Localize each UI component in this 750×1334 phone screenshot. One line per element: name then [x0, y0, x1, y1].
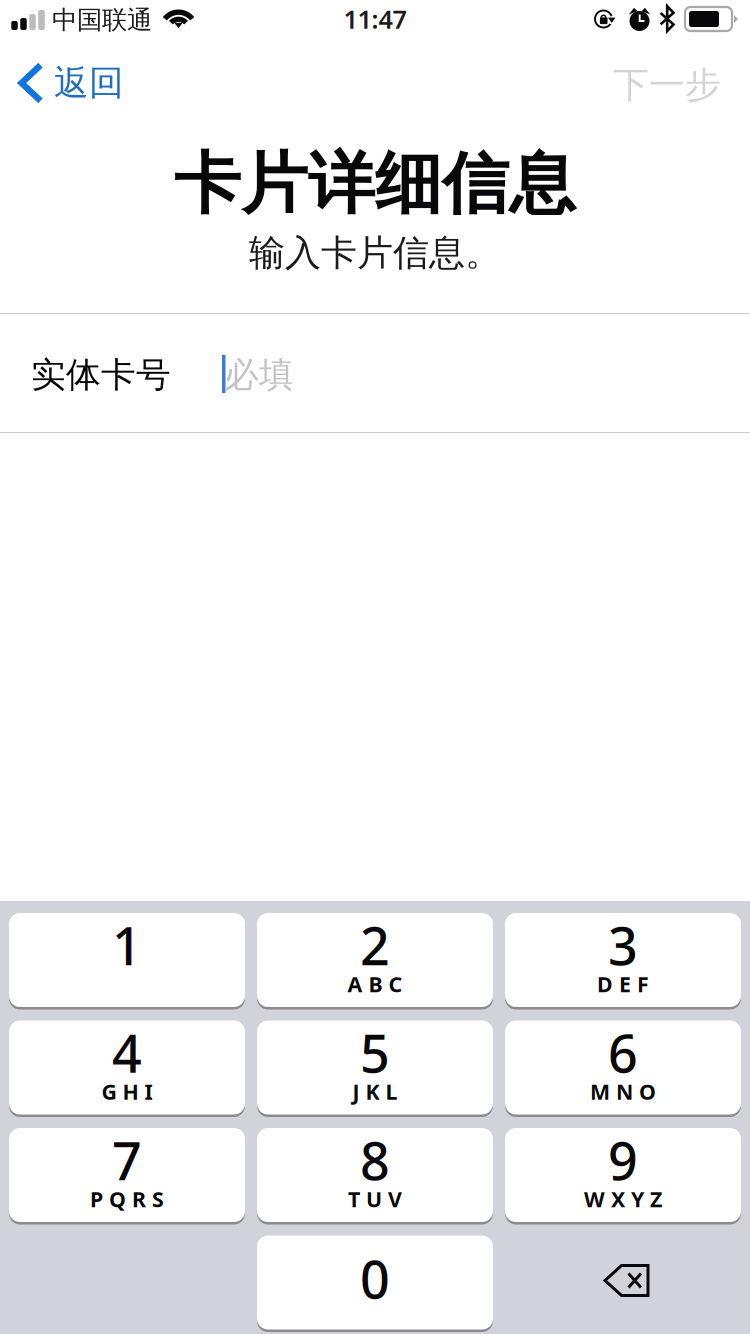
staticText: D E F: [597, 970, 649, 998]
button[interactable]: 3: [505, 913, 741, 1010]
staticText: 4: [112, 1018, 142, 1087]
staticText: 返回: [54, 62, 124, 104]
staticText: 11:47: [343, 2, 406, 36]
staticText: 7: [112, 1125, 142, 1195]
staticText: 实体卡号: [31, 354, 171, 396]
staticText: 3: [608, 910, 638, 980]
button[interactable]: 9: [505, 1128, 741, 1225]
button[interactable]: Delete: [505, 1235, 741, 1329]
staticText: 中国联通: [52, 4, 152, 35]
staticText: T U V: [348, 1185, 402, 1213]
staticText: 6: [608, 1018, 638, 1087]
staticText: P Q R S: [90, 1185, 164, 1213]
staticText: 必填: [224, 354, 294, 396]
button[interactable]: 1: [9, 913, 245, 1010]
button[interactable]: 6: [505, 1020, 741, 1117]
button[interactable]: 下一步: [596, 58, 736, 116]
staticText: W X Y Z: [584, 1185, 662, 1213]
staticText: 9: [608, 1125, 638, 1195]
staticText: G H I: [101, 1077, 152, 1106]
button[interactable]: 4: [9, 1020, 245, 1117]
staticText: 5: [360, 1018, 390, 1087]
button[interactable]: 7: [9, 1128, 245, 1225]
button[interactable]: 2: [257, 913, 493, 1010]
staticText: 输入卡片信息。: [249, 231, 501, 275]
button[interactable]: 0: [257, 1235, 493, 1332]
staticText: 1: [112, 910, 142, 980]
staticText: J K L: [352, 1077, 397, 1106]
staticText: 2: [360, 910, 390, 980]
button[interactable]: 8: [257, 1128, 493, 1225]
staticText: 0: [360, 1244, 390, 1313]
button[interactable]: 实体卡号: [0, 314, 750, 432]
staticText: M N O: [590, 1077, 656, 1106]
button[interactable]: 5: [257, 1020, 493, 1117]
staticText: 下一步: [613, 63, 721, 107]
staticText: A B C: [347, 970, 402, 998]
button[interactable]: 返回: [0, 58, 140, 116]
staticText: 8: [360, 1125, 390, 1195]
staticText: 卡片详细信息: [174, 143, 576, 225]
